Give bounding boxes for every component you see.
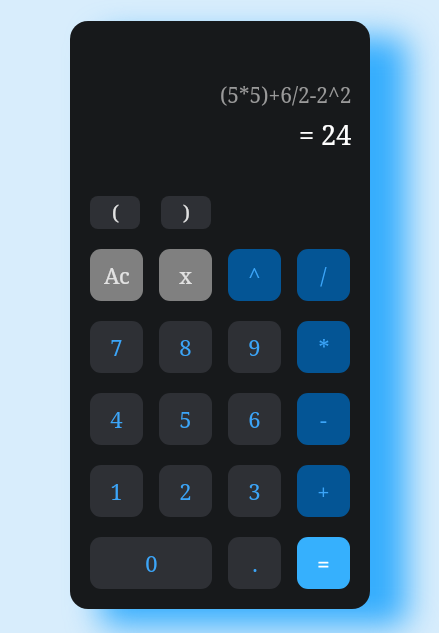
- staticText: 2: [179, 476, 192, 506]
- button[interactable]: 3: [228, 465, 281, 517]
- staticText: 0: [145, 548, 158, 578]
- button[interactable]: 7: [90, 321, 143, 373]
- staticText: ): [183, 199, 190, 226]
- staticText: 6: [248, 404, 261, 434]
- button[interactable]: 5: [159, 393, 212, 445]
- staticText: +: [317, 476, 330, 506]
- staticText: (5*5)+6/2-2^2: [220, 81, 352, 110]
- staticText: 1: [110, 476, 123, 506]
- staticText: ^: [248, 260, 261, 290]
- button[interactable]: (: [90, 196, 140, 229]
- button[interactable]: ^: [228, 249, 281, 301]
- staticText: -: [320, 404, 327, 434]
- button[interactable]: x: [159, 249, 212, 301]
- staticText: .: [252, 548, 258, 578]
- staticText: 4: [110, 404, 123, 434]
- staticText: *: [318, 332, 330, 362]
- staticText: 3: [248, 476, 261, 506]
- button[interactable]: 9: [228, 321, 281, 373]
- staticText: 8: [179, 332, 192, 362]
- button[interactable]: 1: [90, 465, 143, 517]
- staticText: /: [320, 260, 327, 290]
- button[interactable]: 4: [90, 393, 143, 445]
- staticText: 7: [110, 332, 123, 362]
- staticText: Ac: [104, 260, 130, 290]
- button[interactable]: 6: [228, 393, 281, 445]
- staticText: 5: [179, 404, 192, 434]
- button[interactable]: 2: [159, 465, 212, 517]
- button[interactable]: *: [297, 321, 350, 373]
- button[interactable]: 8: [159, 321, 212, 373]
- staticText: =: [317, 548, 330, 578]
- button[interactable]: /: [297, 249, 350, 301]
- button[interactable]: -: [297, 393, 350, 445]
- button[interactable]: Ac: [90, 249, 143, 301]
- staticText: = 24: [299, 116, 352, 153]
- staticText: x: [179, 260, 192, 290]
- staticText: (: [112, 199, 119, 226]
- button[interactable]: .: [228, 537, 281, 589]
- button[interactable]: ): [161, 196, 211, 229]
- staticText: 9: [248, 332, 261, 362]
- button[interactable]: =: [297, 537, 350, 589]
- button[interactable]: 0: [90, 537, 212, 589]
- button[interactable]: +: [297, 465, 350, 517]
